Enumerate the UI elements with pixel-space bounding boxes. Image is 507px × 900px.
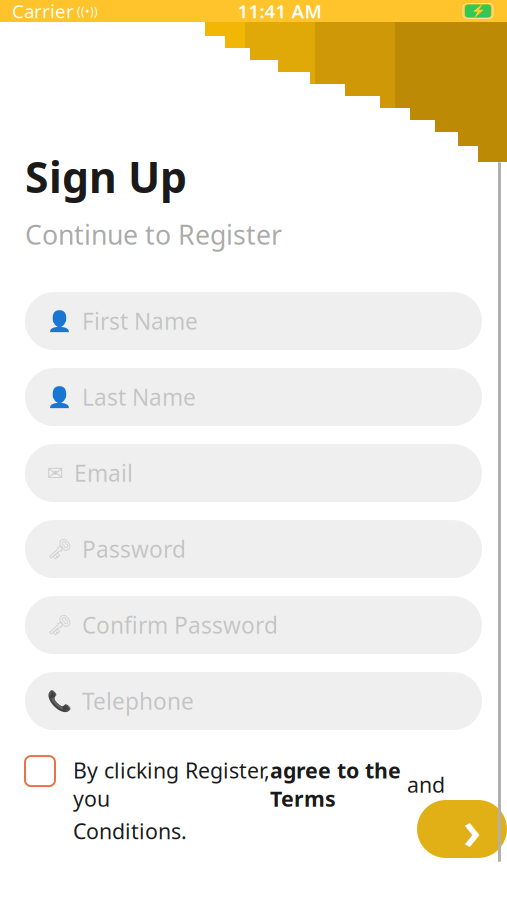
staticText: 📞 <box>47 690 72 712</box>
staticText: Telephone <box>82 686 194 716</box>
staticText: agree to the Terms <box>270 756 401 813</box>
staticText: By clicking Register, you <box>73 756 270 813</box>
button[interactable]: Next <box>417 800 507 858</box>
staticText: First Name <box>82 306 198 336</box>
staticText: Conditions. <box>73 817 187 845</box>
staticText: 👤 <box>47 386 72 408</box>
button[interactable]: 📞 <box>25 672 482 730</box>
button[interactable]: 👤 <box>25 292 482 350</box>
staticText: › <box>463 794 481 864</box>
button[interactable]: 🗝 <box>25 596 482 654</box>
staticText: ((•)) <box>74 3 98 19</box>
button[interactable]: 👤 <box>25 368 482 426</box>
staticText: ⚡ <box>470 4 485 18</box>
button[interactable]: ✉ <box>25 444 482 502</box>
staticText: 🗝 <box>47 538 72 560</box>
staticText: Sign Up <box>25 148 187 205</box>
staticText: 👤 <box>47 310 72 332</box>
staticText: 🗝 <box>47 614 72 636</box>
staticText: Carrier <box>12 0 74 23</box>
staticText: Confirm Password <box>82 610 278 640</box>
staticText: Password <box>82 534 186 564</box>
staticText: 11:41 AM <box>237 0 321 23</box>
staticText: Last Name <box>82 382 196 412</box>
staticText: Continue to Register <box>25 217 282 252</box>
button[interactable]: By clicking Register, you <box>25 756 482 845</box>
staticText: ✉ <box>47 462 64 484</box>
button[interactable]: 🗝 <box>25 520 482 578</box>
staticText: Email <box>74 458 133 488</box>
staticText: and <box>401 770 445 798</box>
